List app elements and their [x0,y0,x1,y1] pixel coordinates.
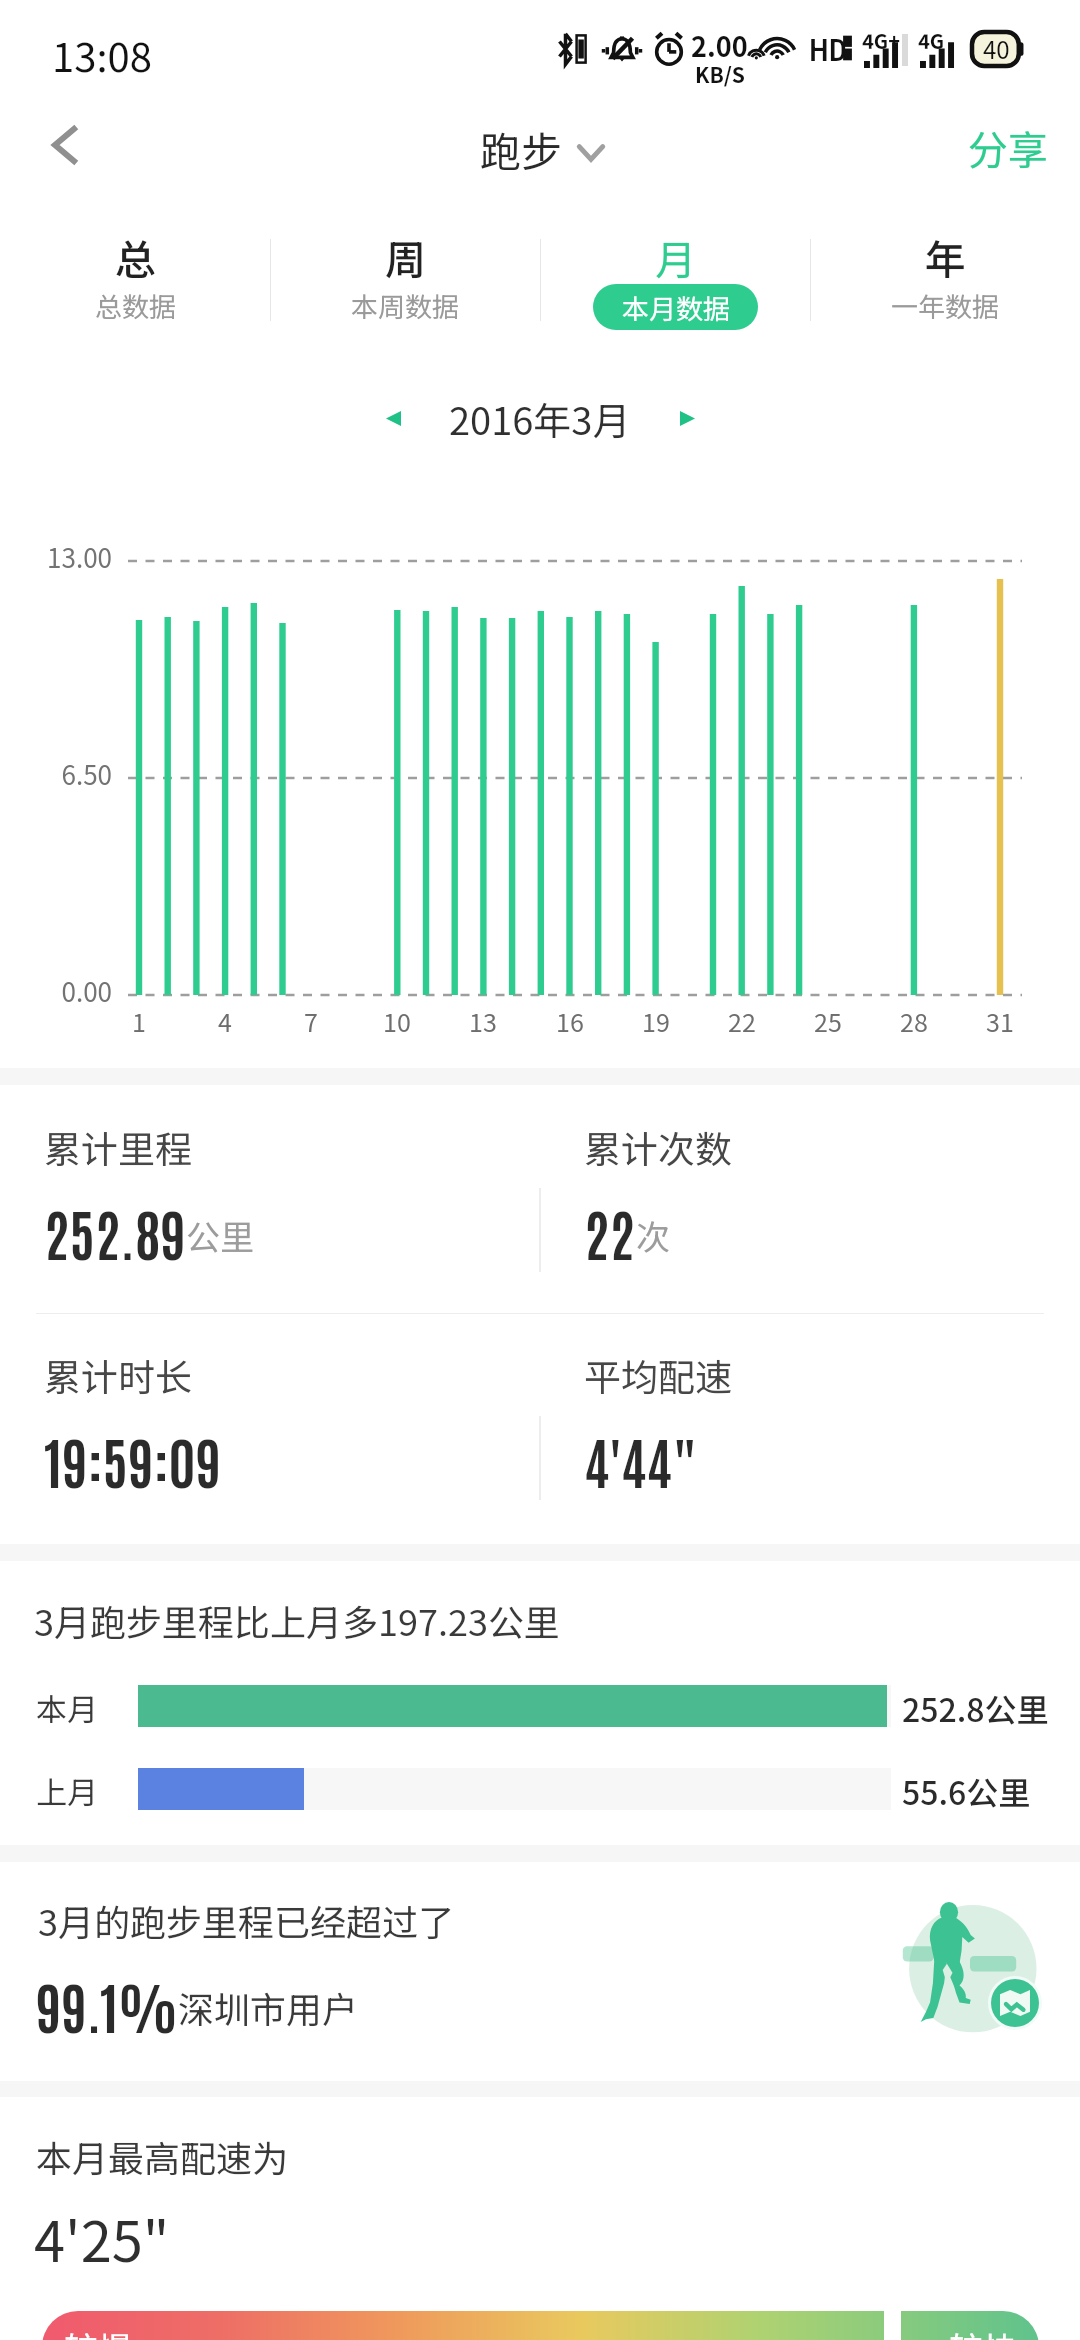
staticText: 累计里程 [44,1120,192,1174]
staticText: 99.1% [36,1969,178,2040]
staticText: 本月最高配速为 [36,2130,289,2182]
staticText: 16 [536,1003,604,1039]
staticText: 252.8公里 [902,1685,1049,1727]
staticText: 公里 [186,1211,254,1260]
button[interactable]: 年 [810,196,1080,360]
staticText: 2016年3月 [449,391,631,446]
staticText: 本周数据 [351,286,459,325]
staticText: 本月数据 [622,288,730,327]
staticText: 总数据 [95,286,176,325]
staticText: 次 [636,1211,670,1260]
button[interactable]: 跑步 [480,119,604,178]
staticText: 累计次数 [584,1120,732,1174]
staticText: 分享 [968,119,1048,177]
staticText: 总 [115,227,156,286]
staticText: 6.50 [10,755,112,793]
staticText: 31 [966,1003,1034,1039]
staticText: 13.00 [10,538,112,576]
button[interactable]: 月 [540,196,810,360]
staticText: 本月 [36,1685,98,1727]
staticText: 跑步 [480,119,562,178]
staticText: HD [809,31,847,69]
staticText: 一年数据 [891,286,999,325]
staticText: 55.6公里 [902,1768,1031,1810]
staticText: 周 [385,227,426,286]
staticText: 7 [277,1003,345,1039]
staticText: 4'44" [584,1424,698,1495]
staticText: 252.89 [44,1196,186,1267]
staticText: 累计时长 [44,1348,192,1402]
button[interactable]: Previous month [362,387,424,449]
staticText: 25 [794,1003,862,1039]
button[interactable]: 总 [0,196,270,360]
staticText: 13 [449,1003,517,1039]
staticText: 上月 [36,1768,98,1810]
button[interactable]: 周 [270,196,540,360]
staticText: 19:59:09 [44,1424,222,1495]
staticText: 40 [983,31,1010,66]
staticText: 10 [363,1003,431,1039]
staticText: 13:08 [52,26,152,84]
staticText: 年 [925,227,966,286]
button[interactable]: Next month [656,387,718,449]
staticText: 3月跑步里程比上月多197.23公里 [34,1594,560,1646]
staticText: 较快 [949,2323,1017,2340]
staticText: 22 [584,1196,636,1267]
staticText: 深圳市用户 [178,1981,359,2033]
staticText: 3月的跑步里程已经超过了 [38,1894,454,1946]
button[interactable]: Back [16,100,112,196]
staticText: 4G [918,26,945,55]
staticText: 2.00 [691,26,748,65]
button[interactable]: 分享 [936,100,1080,196]
staticText: 较慢 [64,2323,132,2340]
staticText: 4 [191,1003,259,1039]
staticText: 1 [105,1003,173,1039]
staticText: 0.00 [10,972,112,1010]
staticText: 22 [708,1003,776,1039]
staticText: 19 [622,1003,690,1039]
staticText: 4'25" [34,2197,170,2278]
staticText: 4G+ [862,26,900,55]
staticText: 平均配速 [584,1348,732,1402]
staticText: 月 [655,227,696,286]
staticText: 28 [880,1003,948,1039]
staticText: KB/S [695,59,745,89]
